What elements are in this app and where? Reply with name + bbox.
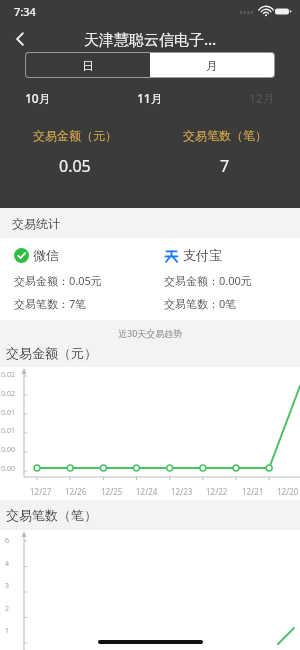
staticText: 交易金额：0.05元: [14, 273, 102, 288]
staticText: 0.00: [1, 464, 15, 474]
staticText: 12/22: [206, 486, 228, 497]
staticText: 1: [5, 626, 10, 636]
staticText: 7:34: [14, 4, 36, 19]
staticText: 0.01: [1, 426, 15, 436]
staticText: 交易金额：0.00元: [164, 273, 252, 288]
button[interactable]: Back: [0, 22, 40, 56]
staticText: 交易笔数（笔）: [183, 128, 267, 143]
staticText: 交易统计: [12, 216, 60, 231]
staticText: 12/21: [242, 486, 264, 497]
staticText: 日: [82, 58, 94, 73]
staticText: 交易笔数（笔）: [6, 507, 97, 523]
staticText: 近30天交易趋势: [118, 327, 183, 339]
button[interactable]: 10月: [25, 90, 51, 106]
staticText: 0.00: [1, 445, 15, 455]
staticText: 天津慧聪云信电子…: [84, 29, 217, 49]
staticText: 4: [5, 559, 10, 569]
staticText: 交易金额（元）: [33, 128, 117, 143]
staticText: 微信: [33, 247, 59, 263]
staticText: 12/27: [30, 486, 52, 497]
staticText: 交易金额（元）: [6, 345, 97, 361]
staticText: 7: [220, 155, 230, 177]
staticText: 12/25: [101, 486, 123, 497]
button[interactable]: 日: [26, 53, 150, 77]
staticText: 12/20: [277, 486, 299, 497]
staticText: 12/24: [136, 486, 158, 497]
staticText: 支付宝: [183, 247, 222, 263]
staticText: 0.05: [59, 155, 91, 177]
staticText: 3: [5, 581, 10, 591]
staticText: 交易笔数：0笔: [164, 296, 237, 311]
staticText: 6: [5, 536, 10, 546]
button[interactable]: 11月: [137, 90, 163, 106]
staticText: 交易笔数：7笔: [14, 296, 87, 311]
button[interactable]: 月: [150, 53, 274, 77]
button[interactable]: 12月: [249, 90, 275, 106]
staticText: 12/26: [65, 486, 87, 497]
staticText: 月: [206, 58, 218, 73]
staticText: 0.02: [1, 370, 15, 380]
staticText: 0.02: [1, 389, 15, 399]
staticText: 0.01: [1, 408, 15, 418]
staticText: 12/23: [171, 486, 193, 497]
staticText: 2: [5, 604, 10, 614]
